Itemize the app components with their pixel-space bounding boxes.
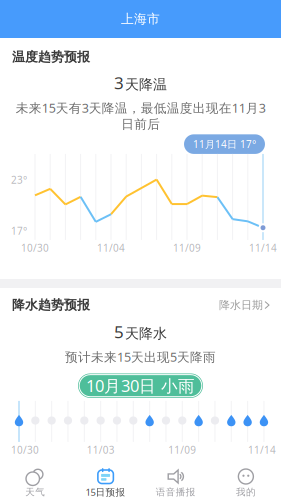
staticText: 15日预报 [85,485,125,498]
staticText: 上海市 [121,11,160,27]
button[interactable]: 我的 [211,468,281,498]
staticText: 10/30 [11,443,39,457]
staticText: 我的 [236,486,256,498]
staticText: 预计未来15天出现5天降雨 [65,348,216,365]
staticText: 天气 [25,486,45,498]
staticText: 11/14 [248,443,276,457]
staticText: 天降水 [125,325,167,342]
staticText: 23° [11,173,27,186]
staticText: 11/04 [97,241,125,255]
staticText: 5 [114,320,124,343]
staticText: 天降温 [125,76,167,93]
staticText: 未来15天有3天降温，最低温度出现在11月3日前后 [15,99,265,132]
staticText: 降水日期 [219,298,263,312]
staticText: 10/30 [21,241,49,255]
button[interactable]: 天气 [0,468,70,498]
staticText: 降水趋势预报 [12,297,90,313]
staticText: 11月14日 17° [193,137,256,151]
staticText: 温度趋势预报 [12,49,90,65]
button[interactable]: 15日预报 [70,467,140,498]
staticText: 10月30日 小雨 [86,374,195,397]
staticText: 语音播报 [156,486,196,498]
staticText: 11/09 [168,443,196,457]
button[interactable]: 语音播报 [140,468,211,498]
staticText: 11/14 [249,241,277,255]
staticText: 11/09 [173,241,201,255]
staticText: 11/03 [87,443,115,457]
button[interactable]: 降水日期 [219,298,269,312]
staticText: 17° [11,224,27,237]
staticText: 3 [114,71,124,94]
